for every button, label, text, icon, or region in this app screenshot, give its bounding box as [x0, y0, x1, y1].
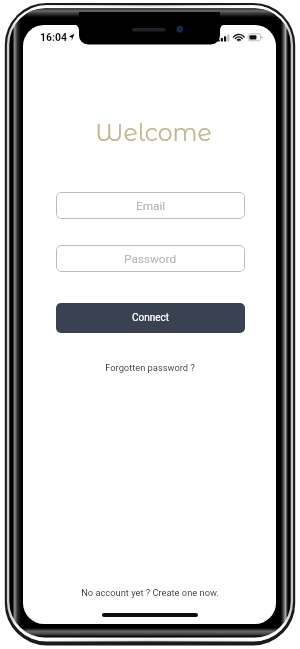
staticText: Email [136, 199, 166, 213]
button[interactable]: Forgotten password ? [23, 362, 276, 373]
button[interactable]: Email [56, 192, 245, 219]
button[interactable]: No account yet ? Create one now. [23, 587, 276, 598]
button[interactable]: Connect [56, 303, 245, 333]
button[interactable]: Password [56, 245, 245, 272]
staticText: Forgotten password ? [105, 362, 195, 373]
staticText: Password [124, 252, 177, 266]
staticText: Connect [132, 312, 170, 324]
staticText: 16:04 [40, 31, 68, 43]
staticText: No account yet ? Create one now. [81, 587, 219, 598]
staticText: Welcome [27, 118, 276, 147]
